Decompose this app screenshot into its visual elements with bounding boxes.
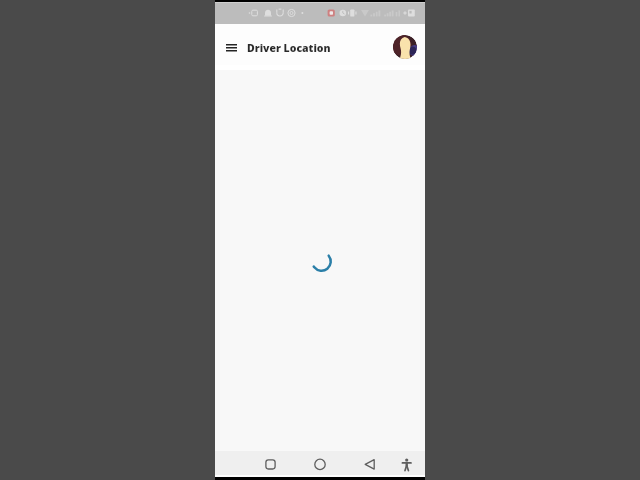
button[interactable]: Open navigation menu [218,34,245,61]
button[interactable]: Accessibility [396,451,418,473]
button[interactable]: Recents [260,451,282,473]
button[interactable]: Home [309,451,331,473]
button[interactable]: Back [358,451,380,473]
staticText: Driver Location [247,41,331,55]
button[interactable]: Profile [393,35,417,59]
